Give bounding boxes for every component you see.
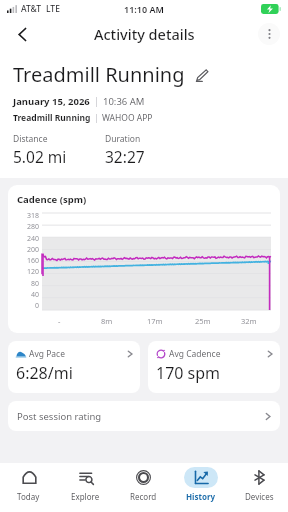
staticText: Distance (13, 133, 48, 145)
button[interactable]: Avg Cadence (148, 341, 280, 393)
button[interactable]: Post session rating (8, 401, 280, 431)
staticText: 6:28/mi (16, 362, 73, 384)
staticText: Activity details (94, 24, 195, 44)
staticText: History (186, 491, 216, 502)
staticText: 240 (26, 234, 39, 243)
staticText: Record (130, 491, 157, 502)
staticText: Treadmill Running (13, 61, 185, 88)
staticText: Avg Pace (29, 348, 65, 360)
button[interactable]: History (172, 467, 230, 512)
staticText: 318 (26, 211, 39, 220)
staticText: 160 (26, 256, 39, 265)
button[interactable]: Cadence (spm) (8, 185, 280, 333)
staticText: Duration (105, 133, 141, 145)
staticText: 200 (26, 245, 39, 254)
staticText: 280 (26, 222, 39, 231)
staticText: 10:36 AM (103, 95, 145, 108)
staticText: 32:27 (105, 146, 145, 167)
staticText: Explore (71, 491, 100, 502)
button[interactable]: More options (258, 23, 280, 45)
staticText: 120 (26, 267, 39, 276)
staticText: 5.02 mi (13, 146, 67, 167)
staticText: Today (17, 491, 40, 502)
staticText: January 15, 2026 (13, 95, 90, 108)
button[interactable]: Avg Pace (8, 341, 140, 393)
staticText: 8m (101, 316, 113, 326)
staticText: Post session rating (17, 410, 102, 423)
button[interactable]: Edit (192, 65, 212, 85)
button[interactable]: Back (8, 20, 36, 48)
staticText: Avg Cadence (169, 348, 221, 360)
staticText: 170 spm (156, 362, 221, 384)
staticText: WAHOO APP (102, 112, 153, 124)
button[interactable]: Devices (230, 467, 288, 512)
staticText: Devices (245, 491, 274, 502)
staticText: LTE (46, 3, 60, 15)
button[interactable]: Record (114, 467, 172, 512)
staticText: 40 (30, 290, 39, 299)
staticText: Cadence (spm) (17, 193, 87, 206)
staticText: 0 (34, 301, 39, 310)
staticText: - (58, 316, 61, 326)
button[interactable]: Explore (57, 467, 114, 512)
button[interactable]: Today (0, 467, 57, 512)
staticText: 11:10 AM (124, 3, 164, 15)
staticText: 17m (147, 316, 163, 326)
staticText: 80 (30, 279, 39, 288)
staticText: 32m (241, 316, 257, 326)
staticText: Treadmill Running (13, 112, 91, 124)
staticText: AT&T (21, 3, 42, 15)
staticText: 25m (195, 316, 211, 326)
